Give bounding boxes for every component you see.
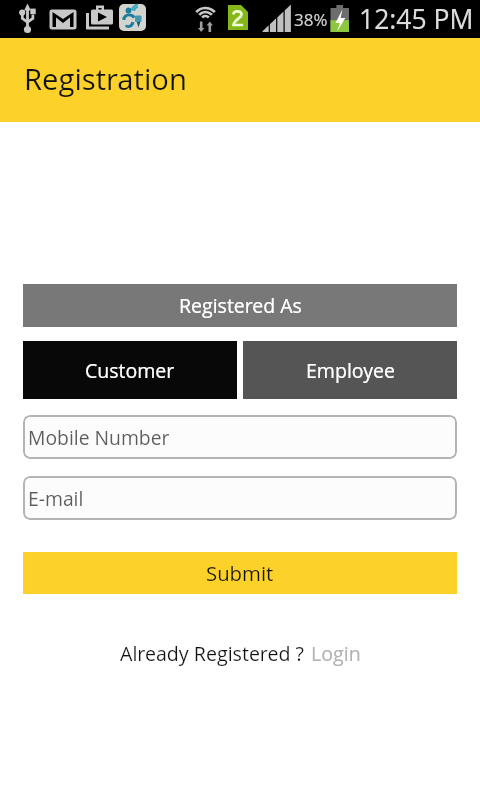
staticText: 12:45 PM: [359, 1, 474, 37]
staticText: Submit: [206, 559, 274, 587]
staticText: Registered As: [179, 292, 302, 319]
button[interactable]: Employee: [243, 341, 457, 399]
button[interactable]: Login: [311, 640, 361, 667]
button[interactable]: Mobile Number: [23, 415, 457, 459]
staticText: E-mail: [28, 485, 84, 511]
staticText: Employee: [306, 357, 395, 384]
staticText: Mobile Number: [28, 424, 170, 450]
button[interactable]: Customer: [23, 341, 237, 399]
button[interactable]: Submit: [23, 552, 457, 594]
staticText: 38%: [294, 8, 328, 31]
button[interactable]: Registered As: [23, 284, 457, 327]
staticText: Login: [311, 640, 361, 667]
staticText: Registration: [24, 59, 187, 99]
staticText: Already Registered ?: [120, 640, 304, 667]
button[interactable]: E-mail: [23, 476, 457, 520]
staticText: Customer: [85, 357, 175, 384]
